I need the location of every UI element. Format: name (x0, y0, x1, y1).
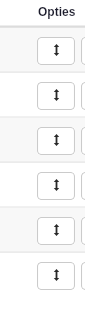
button[interactable]: Sort column (37, 262, 75, 290)
button[interactable]: Sort column (81, 172, 85, 200)
button[interactable]: Sort column (37, 127, 75, 155)
button[interactable]: Opties (38, 5, 76, 18)
button[interactable]: Sort column (81, 37, 85, 65)
button[interactable]: Sort column (81, 217, 85, 245)
button[interactable]: Sort column (37, 37, 75, 65)
button[interactable]: Sort column (37, 172, 75, 200)
button[interactable]: Sort column (81, 262, 85, 290)
button[interactable]: Sort column (37, 82, 75, 110)
button[interactable]: Sort column (81, 127, 85, 155)
button[interactable]: Sort column (81, 82, 85, 110)
button[interactable]: Sort column (37, 217, 75, 245)
staticText: Opties (38, 5, 76, 18)
